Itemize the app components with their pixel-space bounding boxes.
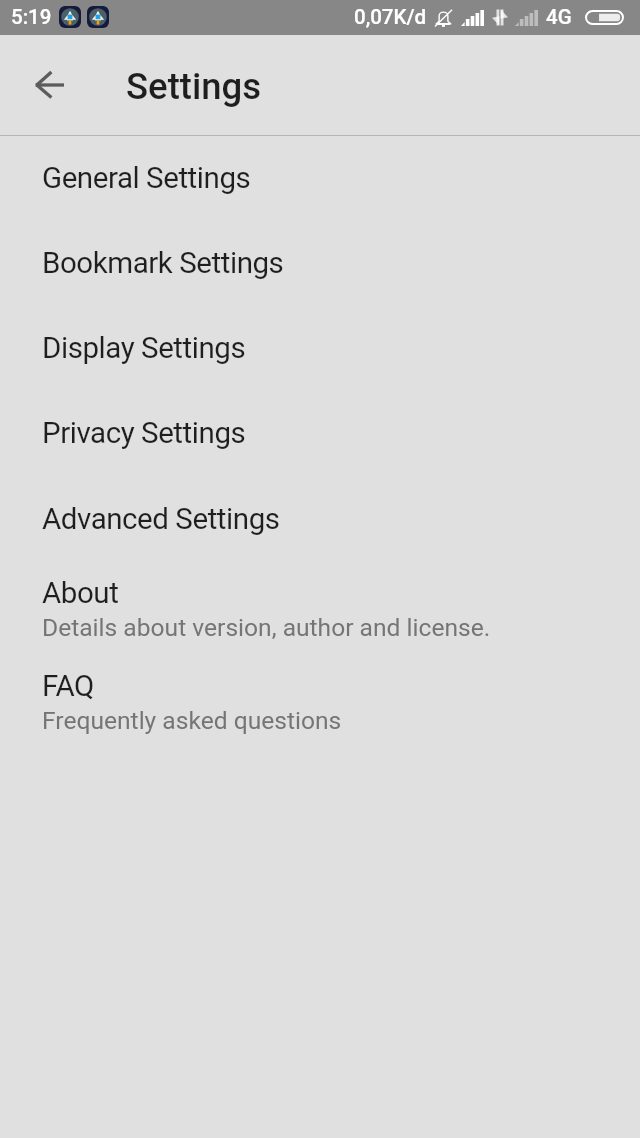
button[interactable]: Display Settings [0, 307, 640, 392]
button[interactable]: Back [10, 45, 90, 125]
button[interactable]: Bookmark Settings [0, 222, 640, 307]
staticText: About [42, 576, 119, 611]
staticText: 4G [546, 5, 572, 29]
staticText: Settings [126, 65, 262, 108]
button[interactable]: Privacy Settings [0, 392, 640, 477]
staticText: 5:19 [11, 5, 52, 29]
staticText: Display Settings [42, 331, 246, 366]
staticText: FAQ [42, 669, 94, 704]
staticText: Privacy Settings [42, 416, 246, 451]
button[interactable]: Advanced Settings [0, 477, 640, 552]
staticText: Frequently asked questions [42, 706, 342, 735]
button[interactable]: FAQ [0, 645, 640, 738]
staticText: 0,07K/d [354, 5, 427, 29]
staticText: Details about version, author and licens… [42, 613, 491, 642]
button[interactable]: About [0, 552, 640, 645]
staticText: Advanced Settings [42, 502, 280, 537]
staticText: Bookmark Settings [42, 246, 284, 281]
button[interactable]: General Settings [0, 137, 640, 222]
staticText: General Settings [42, 161, 251, 196]
